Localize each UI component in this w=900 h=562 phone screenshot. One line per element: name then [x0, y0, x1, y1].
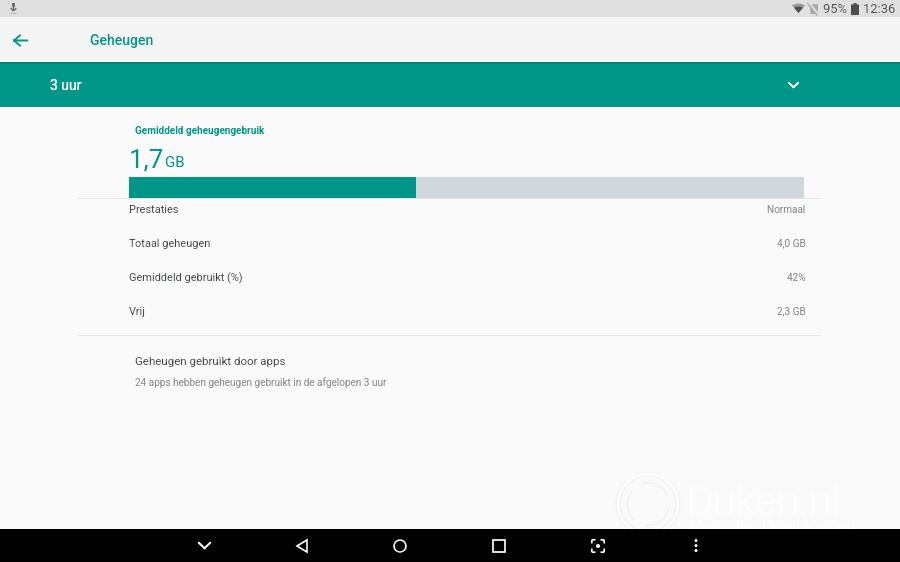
button[interactable]: Back [286, 529, 318, 562]
other: Expand [777, 69, 809, 101]
button[interactable]: Gemiddeld gebruikt (%) [0, 260, 900, 294]
staticText: Prestaties [129, 203, 179, 216]
button[interactable]: Back [4, 24, 36, 56]
staticText: Geheugen [90, 32, 154, 48]
staticText: Meer dan Downloaden [688, 515, 856, 535]
staticText: Gemiddeld gebruikt (%) [129, 271, 243, 284]
staticText: 3 uur [50, 77, 82, 93]
button[interactable]: More options [680, 529, 712, 562]
button[interactable]: Vrij [0, 294, 900, 328]
button[interactable]: Geheugen gebruikt door apps [0, 350, 900, 396]
staticText: 1,7 [129, 144, 164, 174]
button[interactable]: Recent apps [483, 529, 515, 562]
staticText: Vrij [129, 305, 145, 318]
staticText: 12:36 [863, 1, 896, 16]
staticText: Totaal geheugen [129, 237, 211, 250]
staticText: Normaal [767, 204, 806, 216]
staticText: 24 apps hebben geheugen gebruikt in de a… [135, 377, 387, 389]
staticText: Gemiddeld geheugengebruik [135, 125, 265, 137]
button[interactable]: Screenshot [582, 529, 614, 562]
button[interactable]: Home [384, 529, 416, 562]
staticText: Geheugen gebruikt door apps [135, 354, 286, 367]
button[interactable]: 3 uur [0, 62, 900, 107]
button[interactable]: Totaal geheugen [0, 226, 900, 260]
staticText: 42% [787, 272, 806, 284]
staticText: 95% [823, 1, 848, 16]
button[interactable]: Hide keyboard [188, 529, 220, 562]
staticText: GB [165, 153, 185, 171]
staticText: 2,3 GB [777, 306, 806, 318]
button[interactable]: Prestaties [0, 192, 900, 226]
staticText: 4,0 GB [777, 238, 806, 250]
